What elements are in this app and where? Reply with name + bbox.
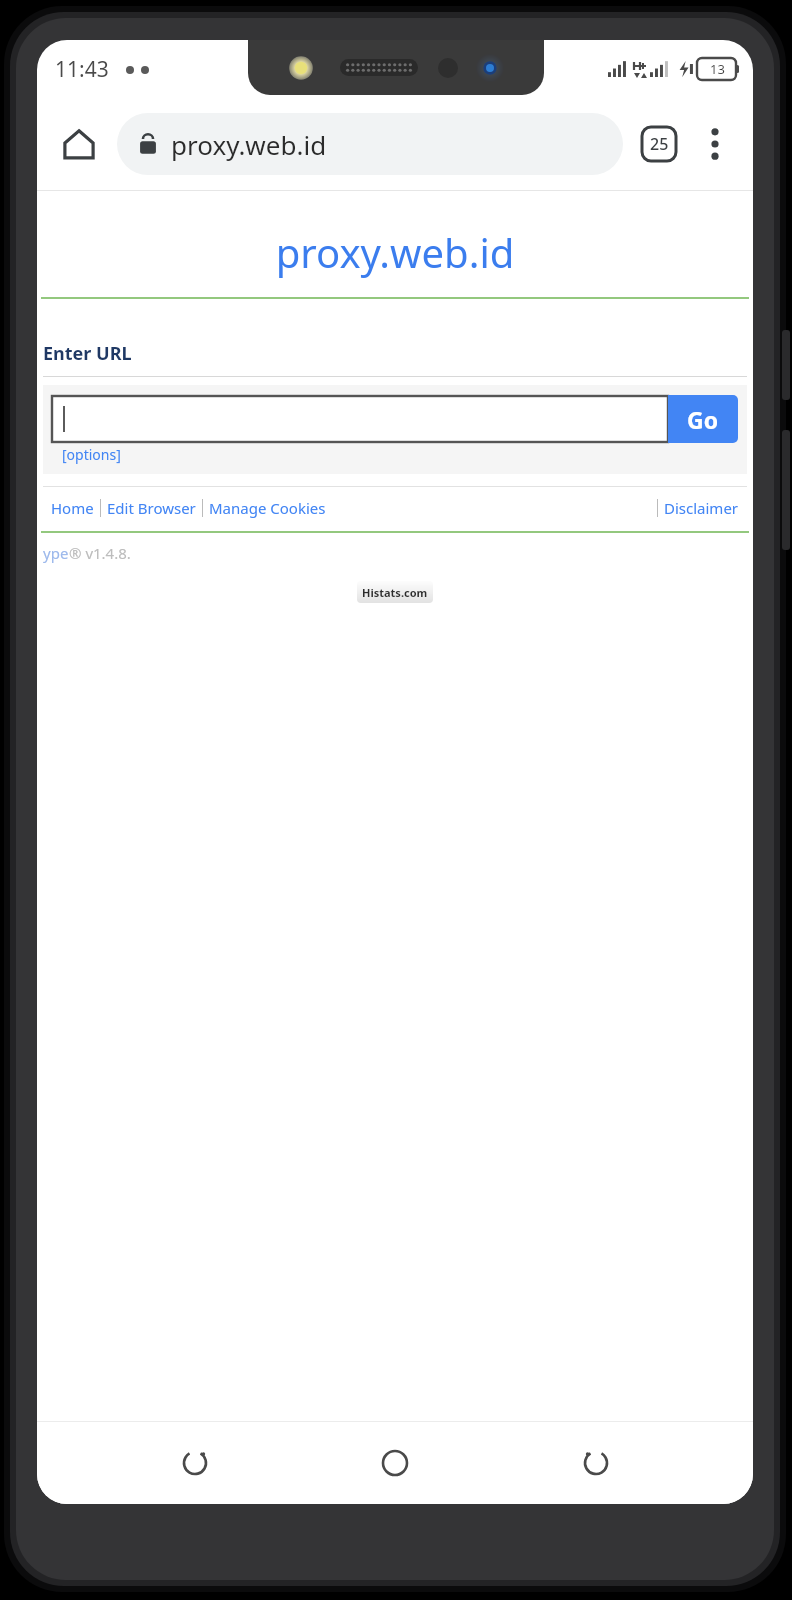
staticText: ype: [43, 543, 69, 563]
staticText: proxy.web.id: [37, 225, 753, 279]
staticText: 25: [650, 133, 669, 155]
button[interactable]: Manage Cookies: [203, 495, 332, 521]
staticText: Disclaimer: [664, 498, 739, 518]
button[interactable]: Home: [45, 495, 100, 521]
staticText: proxy.web.id: [171, 127, 327, 162]
button[interactable]: Home: [51, 116, 107, 172]
staticText: ® v1.4.8.: [69, 543, 131, 563]
button[interactable]: Recent apps: [152, 1427, 238, 1499]
staticText: Manage Cookies: [209, 498, 326, 518]
staticText: Edit Browser: [107, 498, 196, 518]
button[interactable]: Tabs: [631, 116, 687, 172]
staticText: 13: [710, 60, 725, 78]
button[interactable]: Go: [668, 395, 738, 443]
button[interactable]: Histats.com: [357, 581, 433, 603]
staticText: 11:43: [55, 55, 109, 84]
button[interactable]: proxy.web.id: [117, 113, 623, 175]
button[interactable]: [52, 396, 668, 442]
button[interactable]: Disclaimer: [658, 495, 745, 521]
staticText: Histats.com: [362, 585, 428, 600]
button[interactable]: Back: [553, 1427, 639, 1499]
button[interactable]: [options]: [62, 445, 121, 464]
button[interactable]: Edit Browser: [101, 495, 202, 521]
button[interactable]: More options: [687, 116, 743, 172]
staticText: Home: [51, 498, 94, 518]
staticText: Enter URL: [43, 341, 132, 366]
staticText: Go: [687, 404, 719, 435]
button[interactable]: Home: [352, 1427, 438, 1499]
